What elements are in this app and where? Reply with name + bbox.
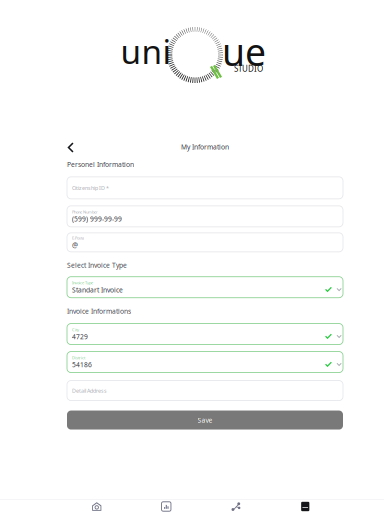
- staticText: Select Invoice Type: [67, 261, 127, 270]
- button[interactable]: Back: [62, 140, 78, 154]
- button[interactable]: Share: [201, 501, 270, 512]
- staticText: Detail Address: [72, 387, 107, 394]
- staticText: (599) 999-99-99: [72, 215, 122, 223]
- staticText: ue: [222, 27, 266, 76]
- staticText: STUDIO: [234, 63, 263, 74]
- staticText: Citizenship ID *: [72, 184, 109, 191]
- staticText: Invoice Type: [72, 280, 93, 285]
- staticText: My Information: [181, 143, 229, 151]
- button[interactable]: Save: [67, 411, 343, 430]
- staticText: Save: [197, 416, 212, 424]
- button[interactable]: Invoices: [270, 501, 340, 512]
- staticText: Invoice Informations: [67, 307, 131, 316]
- staticText: City: [72, 327, 79, 332]
- button[interactable]: Reports: [131, 501, 201, 512]
- staticText: Personel Information: [67, 160, 134, 169]
- staticText: 54186: [72, 360, 92, 369]
- button[interactable]: Home: [62, 501, 131, 512]
- staticText: E-Posta: [72, 235, 84, 241]
- staticText: Phone Number: [72, 209, 98, 215]
- staticText: 4729: [72, 332, 88, 341]
- staticText: Standart Invoice: [72, 285, 123, 294]
- staticText: @: [72, 241, 78, 249]
- staticText: District: [72, 355, 85, 360]
- staticText: uni: [120, 29, 171, 73]
